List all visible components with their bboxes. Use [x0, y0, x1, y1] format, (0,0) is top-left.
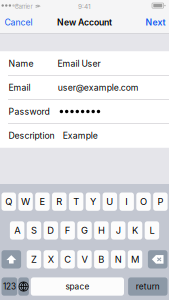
button[interactable]: V [77, 250, 92, 268]
staticText: H [98, 225, 105, 236]
staticText: S [31, 225, 37, 236]
staticText: X [48, 254, 54, 265]
button[interactable]: 123 [1, 277, 17, 296]
button[interactable]: W [18, 192, 33, 211]
staticText: N [115, 254, 122, 265]
button[interactable]: J [111, 221, 125, 240]
staticText: Example [63, 130, 98, 141]
button[interactable]: L [145, 221, 159, 240]
button[interactable]: M [128, 250, 142, 268]
button[interactable]: P [153, 192, 168, 211]
button[interactable]: Name [0, 51, 169, 75]
staticText: O [140, 196, 147, 207]
staticText: E [39, 196, 45, 207]
button[interactable]: Z [27, 250, 41, 268]
button[interactable]: return [128, 277, 167, 296]
button[interactable]: I [119, 192, 134, 211]
staticText: 9:41 [78, 3, 91, 11]
staticText: F [65, 225, 71, 236]
button[interactable]: R [52, 192, 66, 211]
staticText: U [106, 196, 113, 207]
button[interactable]: T [69, 192, 83, 211]
button[interactable]: F [60, 221, 75, 240]
staticText: D [47, 225, 54, 236]
staticText: V [81, 254, 87, 265]
button[interactable]: Next keyboard [18, 277, 29, 296]
button[interactable]: A [10, 221, 24, 240]
staticText: K [132, 225, 138, 236]
button[interactable]: C [60, 250, 75, 268]
button[interactable]: Shift [1, 250, 21, 268]
button[interactable]: Next [143, 11, 165, 33]
button[interactable]: O [136, 192, 151, 211]
staticText: M [131, 254, 139, 265]
button[interactable]: Password [0, 99, 169, 123]
button[interactable]: E [35, 192, 50, 211]
staticText: 123 [3, 281, 16, 291]
staticText: T [73, 196, 79, 207]
staticText: Z [31, 254, 37, 265]
button[interactable]: K [128, 221, 142, 240]
staticText: Cancel [5, 17, 33, 27]
staticText: I [125, 196, 128, 207]
button[interactable]: N [111, 250, 125, 268]
staticText: Y [90, 196, 96, 207]
button[interactable]: Email [0, 75, 169, 99]
button[interactable]: D [44, 221, 58, 240]
staticText: C [64, 254, 71, 265]
button[interactable]: space [31, 277, 124, 296]
staticText: New Account [57, 17, 112, 27]
button[interactable]: Cancel [5, 11, 39, 33]
button[interactable]: Delete [148, 250, 167, 268]
staticText: P [157, 196, 163, 207]
button[interactable]: B [94, 250, 108, 268]
staticText: R [56, 196, 62, 207]
staticText: space [65, 281, 89, 291]
staticText: Email [9, 82, 31, 93]
staticText: B [98, 254, 104, 265]
staticText: Name [9, 58, 34, 69]
staticText: Next [145, 17, 165, 27]
staticText: user@example.com [58, 82, 139, 93]
button[interactable]: Description [0, 123, 169, 147]
staticText: A [14, 225, 20, 236]
button[interactable]: H [94, 221, 109, 240]
staticText: Password [9, 106, 50, 117]
button[interactable]: Q [1, 192, 16, 211]
button[interactable]: U [103, 192, 117, 211]
button[interactable]: G [77, 221, 92, 240]
staticText: return [136, 281, 160, 291]
staticText: W [21, 196, 30, 207]
staticText: Q [5, 196, 12, 207]
staticText: Carrier [14, 3, 32, 10]
staticText: L [149, 225, 154, 236]
button[interactable]: Y [86, 192, 100, 211]
staticText: Email User [57, 58, 100, 69]
staticText: Description [9, 130, 55, 141]
staticText: G [81, 225, 88, 236]
button[interactable]: S [27, 221, 41, 240]
button[interactable]: X [43, 250, 58, 268]
staticText: J [116, 225, 121, 236]
